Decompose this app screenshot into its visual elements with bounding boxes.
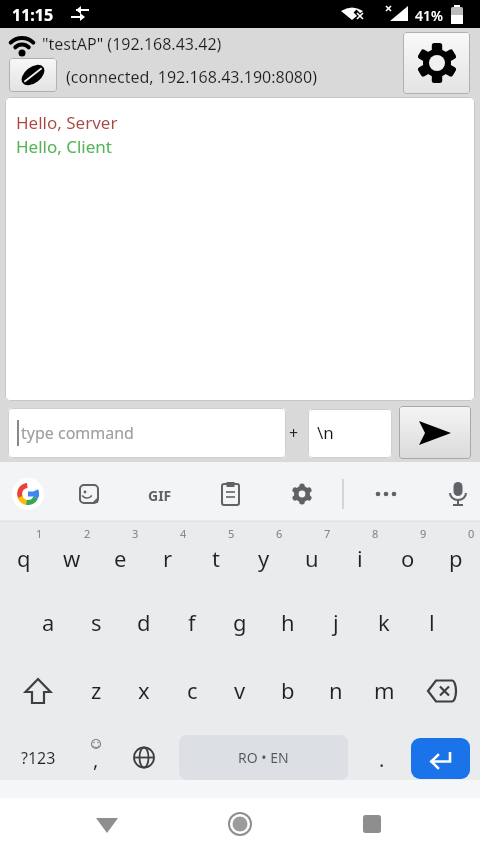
staticText: "testAP" (192.168.43.42) xyxy=(42,33,222,55)
staticText: z xyxy=(91,675,102,705)
button[interactable]: . xyxy=(358,733,406,785)
staticText: c xyxy=(187,675,198,705)
staticText: b xyxy=(281,675,295,705)
button[interactable]: z xyxy=(72,664,120,716)
button[interactable]: v xyxy=(216,664,264,716)
staticText: (connected, 192.168.43.190:8080) xyxy=(66,66,317,88)
button[interactable]: i xyxy=(336,532,384,584)
staticText: 9 xyxy=(420,526,427,541)
button[interactable] xyxy=(349,800,395,846)
staticText: 7 xyxy=(324,526,331,541)
staticText: 11:15 xyxy=(12,4,54,26)
button[interactable]: w xyxy=(48,532,96,584)
staticText: j xyxy=(333,607,339,637)
staticText: l xyxy=(429,607,435,637)
button[interactable]: , xyxy=(72,733,120,785)
button[interactable] xyxy=(217,800,263,846)
staticText: . xyxy=(379,746,385,773)
staticText: \n xyxy=(317,421,334,444)
button[interactable] xyxy=(411,738,470,779)
button[interactable]: d xyxy=(120,596,168,648)
button[interactable]: c xyxy=(168,664,216,716)
staticText: o xyxy=(401,543,415,573)
button[interactable]: q xyxy=(0,532,48,584)
staticText: y xyxy=(258,543,270,573)
staticText: e xyxy=(114,543,127,573)
button[interactable]: m xyxy=(360,664,408,716)
button[interactable] xyxy=(403,32,470,94)
button[interactable]: a xyxy=(24,596,72,648)
button[interactable]: g xyxy=(216,596,264,648)
staticText: Hello, Client xyxy=(16,135,112,158)
button[interactable]: f xyxy=(168,596,216,648)
button[interactable]: r xyxy=(144,532,192,584)
staticText: Hello, Server xyxy=(16,111,118,134)
staticText: + xyxy=(289,422,299,444)
staticText: d xyxy=(137,607,151,637)
staticText: 2 xyxy=(84,526,91,541)
staticText: k xyxy=(378,607,390,637)
staticText: 41% xyxy=(415,6,443,25)
button[interactable]: j xyxy=(312,596,360,648)
staticText: u xyxy=(305,543,319,573)
staticText: , xyxy=(93,746,99,773)
button[interactable] xyxy=(84,800,130,846)
button[interactable] xyxy=(418,666,466,714)
staticText: 0 xyxy=(468,526,475,541)
button[interactable]: ?123 xyxy=(8,735,68,780)
staticText: q xyxy=(17,543,31,573)
staticText: 6 xyxy=(276,526,283,541)
staticText: n xyxy=(329,675,343,705)
button[interactable]: k xyxy=(360,596,408,648)
staticText: 1 xyxy=(36,526,43,541)
staticText: ?123 xyxy=(21,747,56,769)
button[interactable]: u xyxy=(288,532,336,584)
staticText: 3 xyxy=(132,526,139,541)
button[interactable]: e xyxy=(96,532,144,584)
staticText: v xyxy=(234,675,246,705)
button[interactable]: RO • EN xyxy=(179,735,348,780)
staticText: t xyxy=(212,543,220,573)
staticText: r xyxy=(163,543,173,573)
staticText: s xyxy=(91,607,102,637)
button[interactable]: s xyxy=(72,596,120,648)
staticText: 5 xyxy=(228,526,235,541)
button[interactable] xyxy=(9,58,57,92)
button[interactable]: y xyxy=(240,532,288,584)
button[interactable]: l xyxy=(408,596,456,648)
staticText: a xyxy=(42,607,55,637)
button[interactable] xyxy=(14,666,62,714)
button[interactable]: o xyxy=(384,532,432,584)
staticText: RO • EN xyxy=(238,748,289,767)
staticText: g xyxy=(233,607,247,637)
staticText: m xyxy=(374,675,395,705)
button[interactable]: type command xyxy=(8,408,286,458)
staticText: x xyxy=(138,675,150,705)
staticText: i xyxy=(357,543,363,573)
button[interactable]: p xyxy=(432,532,480,584)
button[interactable]: \n xyxy=(308,409,392,458)
staticText: 8 xyxy=(372,526,379,541)
button[interactable] xyxy=(399,406,471,459)
staticText: type command xyxy=(21,422,134,444)
button[interactable]: b xyxy=(264,664,312,716)
button[interactable]: x xyxy=(120,664,168,716)
button[interactable]: n xyxy=(312,664,360,716)
button[interactable]: h xyxy=(264,596,312,648)
staticText: p xyxy=(449,543,463,573)
button[interactable] xyxy=(120,735,168,780)
staticText: h xyxy=(281,607,295,637)
staticText: 4 xyxy=(180,526,187,541)
staticText: w xyxy=(63,543,81,573)
staticText: GIF xyxy=(148,486,172,505)
button[interactable]: t xyxy=(192,532,240,584)
staticText: f xyxy=(188,607,196,637)
